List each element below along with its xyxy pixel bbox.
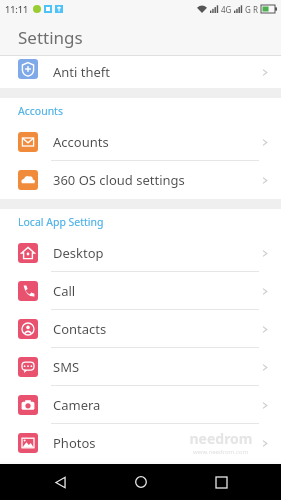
button[interactable]: Anti theft [0,56,281,88]
staticText: Anti theft [53,63,110,81]
staticText: 11:11 [5,3,29,15]
staticText: Accounts [53,133,109,151]
button[interactable]: Contacts [0,310,281,348]
staticText: SMS [53,358,80,376]
staticText: Local App Setting [18,215,104,229]
button[interactable]: Back [40,464,80,500]
staticText: Photos [53,434,96,452]
staticText: needrom [189,429,253,448]
button[interactable]: Photos [0,424,281,462]
button[interactable]: 360 OS cloud settings [0,161,281,199]
staticText: 4G [221,4,232,15]
button[interactable]: Home [121,464,161,500]
staticText: Call [53,282,76,300]
button[interactable]: SMS [0,348,281,386]
staticText: Settings [18,26,83,49]
staticText: www.needrom.com [193,448,249,456]
button[interactable]: Desktop [0,234,281,272]
button[interactable]: Camera [0,386,281,424]
staticText: 360 OS cloud settings [53,171,185,189]
button[interactable]: Recents [201,464,241,500]
staticText: G R [245,4,258,15]
staticText: Camera [53,396,101,414]
staticText: Desktop [53,244,104,262]
staticText: Accounts [18,104,63,118]
staticText: Contacts [53,320,107,338]
button[interactable]: Accounts [0,123,281,161]
button[interactable]: Call [0,272,281,310]
